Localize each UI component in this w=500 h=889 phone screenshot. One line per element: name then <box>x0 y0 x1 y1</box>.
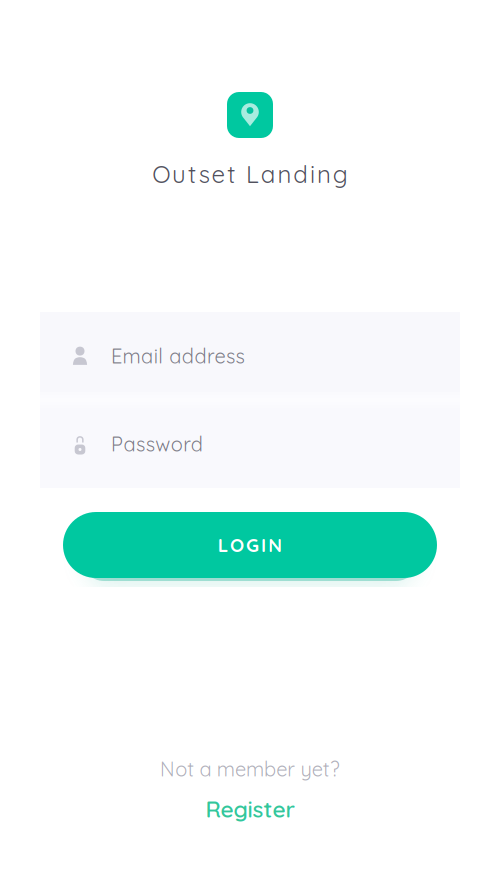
button[interactable]: LOGIN <box>63 512 437 578</box>
staticText: Password <box>111 431 203 456</box>
staticText: Register <box>205 795 294 823</box>
staticText: Not a member yet? <box>160 756 340 781</box>
staticText: Outset Landing <box>152 159 348 189</box>
staticText: Email address <box>111 343 245 368</box>
button[interactable]: Password <box>40 400 460 488</box>
staticText: LOGIN <box>218 533 282 557</box>
button[interactable]: Email address <box>40 312 460 400</box>
button[interactable]: Register <box>205 796 294 822</box>
